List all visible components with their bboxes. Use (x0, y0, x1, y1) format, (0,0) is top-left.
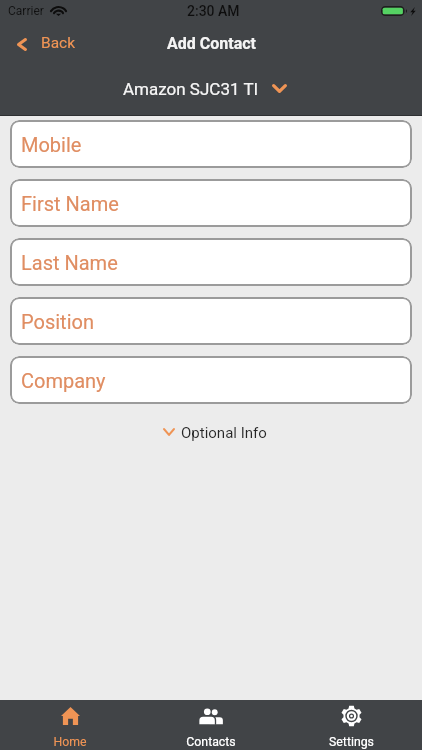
button[interactable]: Back (0, 29, 88, 57)
staticText: Home (53, 735, 87, 749)
staticText: Carrier (8, 4, 44, 18)
staticText: First Name (21, 192, 119, 215)
button[interactable]: Optional Info (155, 418, 275, 448)
other: Settings (341, 705, 362, 727)
staticText: Amazon SJC31 TI (123, 79, 259, 99)
button[interactable]: First Name (10, 179, 412, 227)
staticText: Add Contact (167, 34, 256, 53)
staticText: Back (41, 34, 76, 52)
staticText: 2:30 AM (187, 3, 240, 19)
staticText: Position (21, 310, 94, 333)
button[interactable]: Company (10, 356, 412, 404)
button[interactable]: Position (10, 297, 412, 345)
button[interactable]: Last Name (10, 238, 412, 286)
button[interactable]: Contacts (140, 700, 281, 750)
button[interactable]: Home (0, 700, 140, 750)
other: Home (61, 707, 80, 725)
staticText: Contacts (186, 735, 236, 749)
other: Select site (272, 84, 287, 93)
button[interactable]: Settings (281, 700, 422, 750)
other: Contacts (199, 708, 223, 724)
staticText: Last Name (21, 251, 118, 274)
button[interactable]: Mobile (10, 120, 412, 168)
staticText: Optional Info (181, 424, 267, 442)
staticText: Mobile (21, 133, 82, 156)
staticText: Settings (329, 735, 374, 749)
staticText: Company (21, 369, 106, 392)
button[interactable]: Amazon SJC31 TI (115, 71, 295, 107)
